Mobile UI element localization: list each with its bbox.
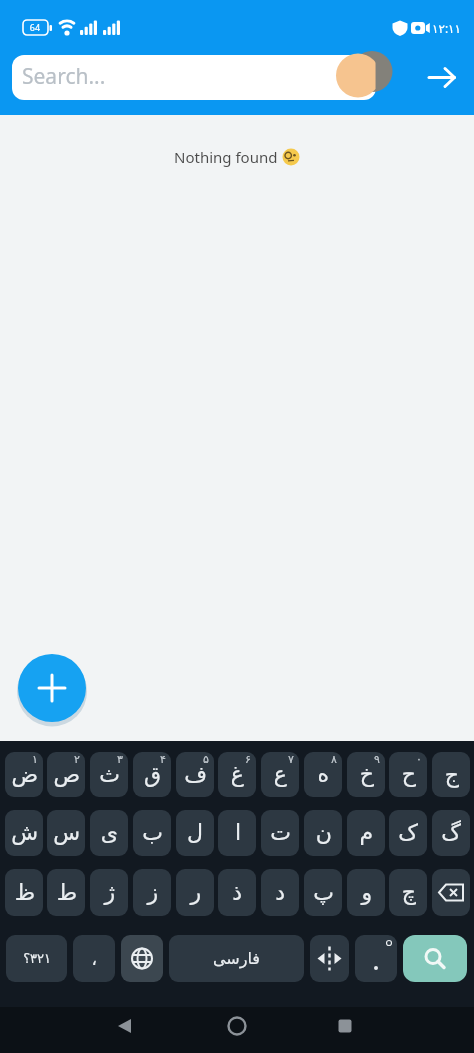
staticText: ع — [273, 762, 287, 788]
button[interactable] — [18, 654, 86, 722]
staticText: ظ — [14, 880, 35, 906]
button[interactable]: فارسی — [169, 935, 304, 982]
staticText: ح — [401, 762, 416, 788]
staticText: ۰ — [416, 753, 422, 766]
button[interactable] — [213, 1007, 261, 1053]
button[interactable]: ز — [133, 869, 171, 916]
staticText: ۵ — [203, 753, 209, 766]
button[interactable] — [432, 869, 470, 916]
button[interactable]: ن — [304, 810, 342, 856]
button[interactable]: گ — [432, 810, 470, 856]
button[interactable]: س — [47, 810, 85, 856]
button[interactable] — [100, 1007, 148, 1053]
button[interactable]: ، — [73, 935, 115, 982]
staticText: س — [53, 820, 80, 846]
staticText: ب — [142, 820, 163, 846]
staticText: ۹ — [374, 753, 380, 766]
button[interactable]: ط — [47, 869, 85, 916]
staticText: ۴ — [160, 753, 166, 766]
button[interactable] — [403, 935, 467, 982]
staticText: د — [275, 880, 285, 906]
staticText: ۳۲۱؟ — [23, 951, 51, 966]
staticText: غ — [230, 762, 244, 788]
staticText: ل — [187, 820, 203, 846]
staticText: ۲ — [74, 753, 80, 766]
staticText: ج — [444, 762, 459, 788]
button[interactable]: ی — [90, 810, 128, 856]
staticText: ۱۲:۱۱ — [432, 20, 461, 36]
staticText: م — [359, 820, 373, 846]
staticText: گ — [441, 820, 461, 846]
staticText: ف — [184, 762, 207, 788]
button[interactable]: ت — [261, 810, 299, 856]
button[interactable]: ب — [133, 810, 171, 856]
staticText: فارسی — [213, 949, 260, 968]
staticText: و — [361, 880, 372, 906]
staticText: ی — [100, 820, 118, 846]
staticText: پ — [313, 880, 334, 906]
staticText: Nothing found — [174, 147, 282, 167]
button[interactable]: ض — [5, 752, 43, 797]
button[interactable]: ج — [432, 752, 470, 797]
staticText: خ — [359, 762, 374, 788]
staticText: ت — [270, 820, 291, 846]
button[interactable] — [321, 1007, 369, 1053]
button[interactable]: ث — [90, 752, 128, 797]
staticText: ن — [315, 820, 332, 846]
button[interactable]: م — [347, 810, 385, 856]
staticText: ژ — [104, 880, 115, 906]
staticText: ش — [11, 820, 38, 846]
button[interactable]: ش — [5, 810, 43, 856]
staticText: ز — [147, 880, 158, 906]
button[interactable] — [310, 935, 349, 982]
staticText: ه — [317, 762, 329, 788]
staticText: ص — [53, 762, 80, 788]
button[interactable]: ه — [304, 752, 342, 797]
button[interactable]: ژ — [90, 869, 128, 916]
staticText: ۱ — [32, 753, 38, 766]
staticText: ۶ — [245, 753, 251, 766]
staticText: ط — [56, 880, 77, 906]
button[interactable]: و — [347, 869, 385, 916]
staticText: 64 — [24, 21, 46, 35]
staticText: چ — [401, 880, 416, 906]
staticText: ض — [11, 762, 38, 788]
button[interactable]: ا — [218, 810, 256, 856]
button[interactable]: ص — [47, 752, 85, 797]
button[interactable] — [418, 55, 466, 100]
button[interactable]: د — [261, 869, 299, 916]
button[interactable]: غ — [218, 752, 256, 797]
staticText: ق — [143, 762, 161, 788]
staticText: ا — [234, 820, 241, 846]
button[interactable]: ف — [176, 752, 214, 797]
staticText: ۳ — [117, 753, 123, 766]
button[interactable]: ر — [176, 869, 214, 916]
staticText: ک — [398, 820, 418, 846]
staticText: Search... — [22, 62, 106, 91]
staticText: ث — [99, 762, 120, 788]
button[interactable] — [355, 935, 397, 982]
staticText: ، — [91, 949, 97, 969]
button[interactable]: ۳۲۱؟ — [6, 935, 67, 982]
staticText: ۷ — [288, 753, 294, 766]
button[interactable]: ل — [176, 810, 214, 856]
button[interactable]: ذ — [218, 869, 256, 916]
button[interactable]: ح — [389, 752, 427, 797]
button[interactable]: ع — [261, 752, 299, 797]
staticText: ر — [190, 880, 201, 906]
button[interactable]: ک — [389, 810, 427, 856]
button[interactable]: خ — [347, 752, 385, 797]
button[interactable]: چ — [389, 869, 427, 916]
button[interactable]: پ — [304, 869, 342, 916]
staticText: ۸ — [331, 753, 337, 766]
button[interactable]: ق — [133, 752, 171, 797]
button[interactable] — [121, 935, 163, 982]
button[interactable]: Search... — [12, 55, 376, 100]
staticText: ذ — [232, 880, 242, 906]
button[interactable]: ظ — [5, 869, 43, 916]
